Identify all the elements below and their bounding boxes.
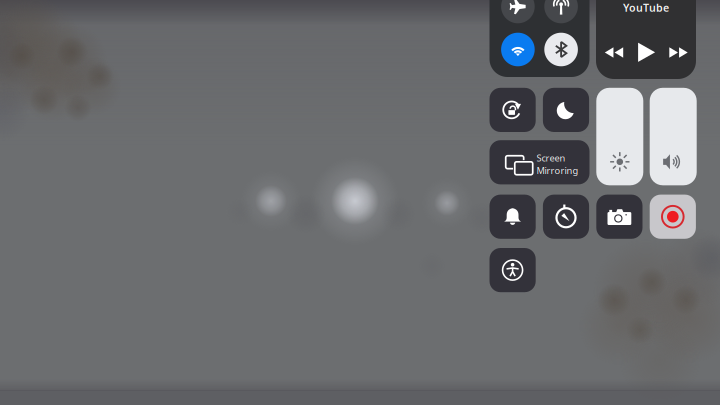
button[interactable]: Screen Recording <box>650 195 696 239</box>
button[interactable]: Alarm <box>489 195 536 239</box>
staticText: YouTube <box>623 0 669 15</box>
staticText: Mirroring <box>536 164 578 176</box>
button[interactable]: Bluetooth <box>544 33 578 66</box>
button[interactable]: Wi-Fi <box>501 33 535 66</box>
button[interactable]: Fast Forward <box>666 41 690 63</box>
button[interactable]: Play <box>635 41 659 63</box>
button[interactable]: Accessibility <box>489 248 536 292</box>
button[interactable]: Airplane Mode <box>501 0 535 23</box>
button[interactable]: Volume <box>650 88 697 185</box>
button[interactable]: Screen <box>489 140 589 184</box>
button[interactable]: Camera <box>596 195 642 239</box>
button[interactable]: Rewind <box>602 41 626 63</box>
button[interactable]: Do Not Disturb <box>543 88 589 132</box>
button[interactable]: Timer <box>543 195 589 239</box>
button[interactable]: Rotation Lock <box>489 88 536 132</box>
button[interactable]: Brightness <box>596 88 643 185</box>
button[interactable]: Cellular Data <box>544 0 578 23</box>
staticText: Screen <box>536 152 565 164</box>
